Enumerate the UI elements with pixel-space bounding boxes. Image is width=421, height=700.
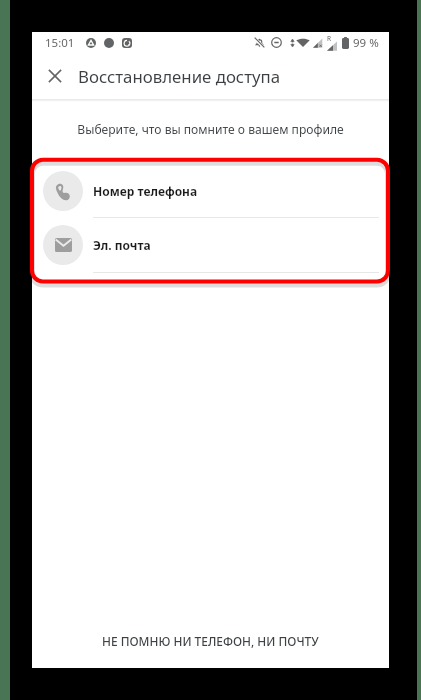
- staticText: Восстановление доступа: [78, 65, 281, 88]
- staticText: 99 %: [353, 35, 379, 51]
- staticText: Выберите, что вы помните о вашем профиле: [32, 121, 389, 137]
- button[interactable]: Close: [32, 53, 78, 99]
- staticText: Номер телефона: [93, 183, 198, 199]
- staticText: Эл. почта: [93, 237, 151, 253]
- button[interactable]: НЕ ПОМНЮ НИ ТЕЛЕФОН, НИ ПОЧТУ: [32, 619, 389, 663]
- staticText: 15:01: [45, 35, 75, 51]
- staticText: НЕ ПОМНЮ НИ ТЕЛЕФОН, НИ ПОЧТУ: [102, 633, 319, 649]
- button[interactable]: Номер телефона: [32, 164, 389, 217]
- staticText: R: [327, 34, 332, 43]
- button[interactable]: Эл. почта: [32, 218, 389, 272]
